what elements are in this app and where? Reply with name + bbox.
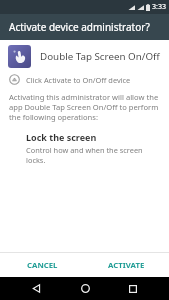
staticText: Lock the screen [26,131,97,143]
staticText: Control how and when the screen locks. [26,145,159,165]
button[interactable]: Back [23,277,49,300]
staticText: Activating this administrator will allow… [9,92,160,122]
button[interactable]: ACTIVATE [84,253,169,277]
staticText: ACTIVATE [108,260,145,271]
staticText: Activate device administrator? [9,20,150,34]
button[interactable]: Recent apps [120,277,146,300]
staticText: Double Tap Screen On/Off [40,50,160,63]
button[interactable]: Home [72,277,98,300]
staticText: 3:33 [152,2,166,12]
button[interactable]: CANCEL [0,253,84,277]
staticText: Click Activate to On/Off device [26,75,131,85]
staticText: CANCEL [27,260,58,271]
